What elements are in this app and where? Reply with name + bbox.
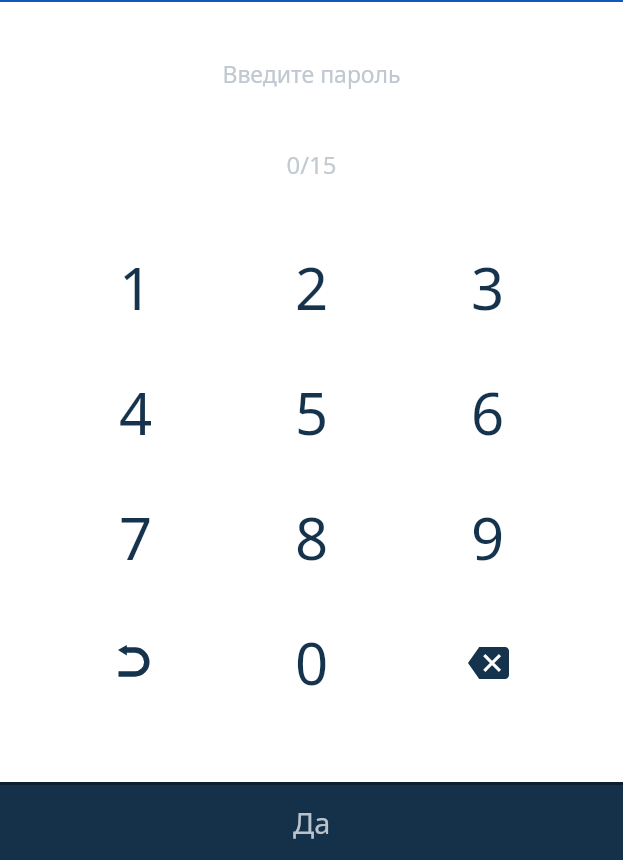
button[interactable]: 7 [48, 475, 224, 600]
staticText: 3 [471, 248, 505, 327]
staticText: 6 [471, 373, 505, 452]
staticText: 5 [295, 373, 329, 452]
button[interactable]: 9 [400, 475, 576, 600]
button[interactable]: 4 [48, 350, 224, 475]
button[interactable]: Undo [48, 600, 224, 725]
button[interactable]: 6 [400, 350, 576, 475]
button[interactable]: 1 [48, 225, 224, 350]
staticText: 7 [119, 498, 153, 577]
button[interactable]: 0 [224, 600, 400, 725]
staticText: Введите пароль [0, 58, 623, 89]
staticText: 2 [295, 248, 329, 327]
button[interactable]: 2 [224, 225, 400, 350]
button[interactable]: Backspace [400, 600, 576, 725]
staticText: 9 [471, 498, 505, 577]
button[interactable]: 3 [400, 225, 576, 350]
staticText: 1 [119, 248, 153, 327]
button[interactable]: 5 [224, 350, 400, 475]
staticText: 0 [295, 623, 329, 702]
staticText: 8 [295, 498, 329, 577]
staticText: Да [293, 803, 331, 842]
staticText: 0/15 [0, 148, 623, 181]
staticText: 4 [119, 373, 153, 452]
button[interactable]: 8 [224, 475, 400, 600]
button[interactable]: Да [0, 782, 623, 860]
